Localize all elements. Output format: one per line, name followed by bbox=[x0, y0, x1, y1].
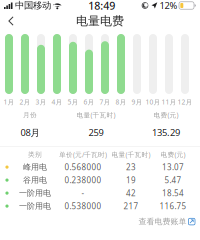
staticText: 3月 bbox=[35, 98, 46, 106]
staticText: 电费(元) bbox=[153, 111, 178, 119]
staticText: 电费(元) bbox=[160, 150, 185, 159]
staticText: 一阶用电 bbox=[19, 201, 51, 211]
staticText: 一阶用电 bbox=[19, 188, 51, 198]
staticText: 12% bbox=[159, 0, 177, 12]
staticText: 单价(元/千瓦时) bbox=[59, 150, 107, 159]
staticText: 10月 bbox=[145, 98, 160, 106]
staticText: 查看电费账单 bbox=[138, 217, 186, 226]
staticText: 11月 bbox=[161, 98, 176, 106]
button[interactable]: 查看电费账单 bbox=[138, 215, 200, 228]
staticText: 6月 bbox=[83, 98, 94, 106]
staticText: 9月 bbox=[131, 98, 142, 106]
staticText: 116.75 bbox=[159, 201, 186, 211]
staticText: 217 bbox=[123, 201, 138, 211]
staticText: 12月 bbox=[177, 98, 192, 106]
staticText: 18.54 bbox=[162, 188, 184, 198]
staticText: 月份 bbox=[23, 111, 37, 119]
staticText: 0.568000 bbox=[64, 162, 101, 172]
staticText: 5.47 bbox=[164, 175, 181, 185]
staticText: 18:49 bbox=[88, 0, 115, 13]
staticText: 1月 bbox=[3, 98, 14, 106]
staticText: 谷用电 bbox=[23, 175, 47, 185]
staticText: 135.29 bbox=[152, 126, 180, 139]
staticText: 0.538000 bbox=[64, 201, 101, 211]
staticText: 23 bbox=[126, 162, 136, 172]
staticText: 电量(千瓦时) bbox=[76, 111, 115, 119]
staticText: - bbox=[81, 188, 84, 198]
staticText: 2月 bbox=[19, 98, 30, 106]
staticText: 电量(千瓦时) bbox=[111, 150, 150, 159]
staticText: 5月 bbox=[67, 98, 78, 106]
staticText: 8月 bbox=[115, 98, 126, 106]
staticText: 0.238000 bbox=[64, 175, 101, 185]
staticText: 中国移动 bbox=[15, 0, 51, 11]
staticText: 08月 bbox=[20, 126, 39, 139]
staticText: 7月 bbox=[99, 98, 110, 106]
staticText: 峰用电 bbox=[23, 162, 47, 172]
button[interactable]: 返回 bbox=[0, 11, 22, 31]
staticText: 13.07 bbox=[162, 162, 184, 172]
staticText: 4月 bbox=[51, 98, 62, 106]
staticText: 42 bbox=[126, 188, 136, 198]
staticText: 类别 bbox=[28, 150, 42, 159]
staticText: 电量电费 bbox=[76, 14, 124, 28]
staticText: 259 bbox=[88, 126, 103, 139]
staticText: 19 bbox=[126, 175, 136, 185]
